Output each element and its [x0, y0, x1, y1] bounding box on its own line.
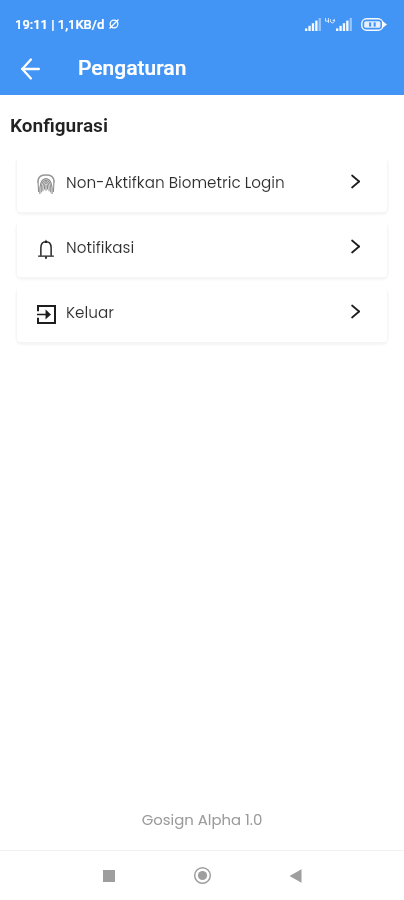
button[interactable]: Recents: [88, 855, 129, 896]
button[interactable]: Non-Aktifkan Biometric Login: [17, 156, 387, 212]
staticText: Konfigurasi: [10, 114, 108, 136]
staticText: Keluar: [66, 302, 114, 323]
staticText: 19:11 | 1,1KB/d: [15, 17, 105, 32]
staticText: Gosign Alpha 1.0: [0, 809, 404, 830]
button[interactable]: Notifikasi: [17, 221, 387, 277]
staticText: Non-Aktifkan Biometric Login: [66, 172, 285, 193]
button[interactable]: Keluar: [17, 286, 387, 342]
button[interactable]: Back: [0, 42, 60, 95]
staticText: Pengaturan: [78, 56, 187, 81]
button[interactable]: Home: [182, 855, 223, 896]
staticText: Notifikasi: [66, 237, 135, 258]
button[interactable]: Back: [275, 855, 316, 896]
